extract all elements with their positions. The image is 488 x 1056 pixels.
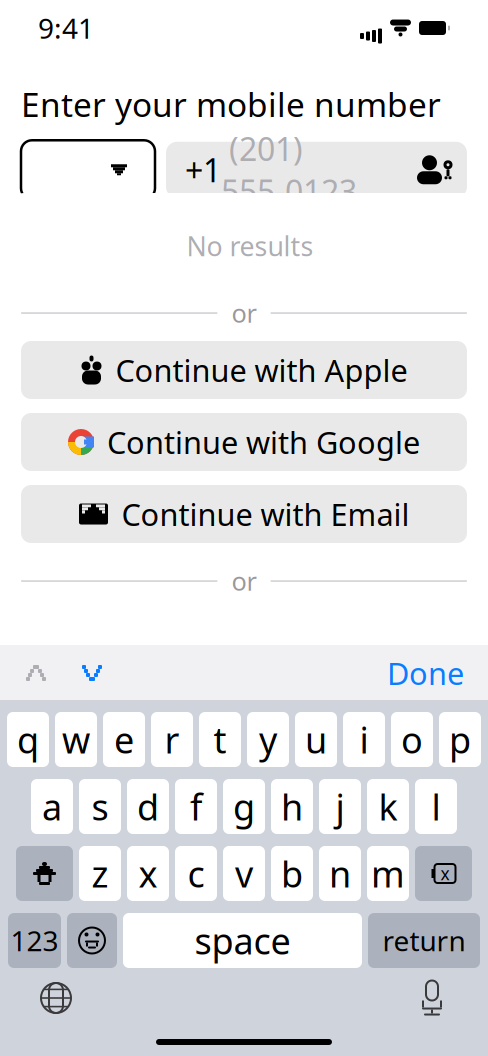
button[interactable]: p <box>439 712 481 767</box>
button[interactable]: Next keyboard <box>31 973 81 1023</box>
staticText: p <box>449 716 471 763</box>
staticText: t <box>213 716 226 763</box>
staticText: l <box>431 783 440 830</box>
button[interactable]: c <box>175 846 217 901</box>
button[interactable]: k <box>367 779 409 834</box>
staticText: j <box>335 783 344 830</box>
staticText: No results <box>186 228 313 264</box>
staticText: g <box>233 783 255 830</box>
button[interactable]: r <box>151 712 193 767</box>
button[interactable]: w <box>55 712 97 767</box>
button[interactable]: j <box>319 779 361 834</box>
staticText: a <box>42 783 62 830</box>
button[interactable]: d <box>127 779 169 834</box>
staticText: Done <box>387 653 464 693</box>
button[interactable]: Delete <box>415 846 472 901</box>
button[interactable]: Continue with Google <box>21 413 467 471</box>
staticText: Continue with Email <box>121 494 409 534</box>
staticText: m <box>371 850 405 897</box>
button[interactable]: z <box>79 846 121 901</box>
button[interactable]: b <box>271 846 313 901</box>
staticText: 9:41 <box>38 9 94 47</box>
staticText: Continue with Apple <box>115 350 407 390</box>
staticText: s <box>91 783 108 830</box>
button[interactable]: v <box>223 846 265 901</box>
button[interactable]: m <box>367 846 409 901</box>
staticText: q <box>17 716 39 763</box>
button[interactable]: n <box>319 846 361 901</box>
button[interactable]: Previous field <box>8 648 64 698</box>
staticText: Continue with Google <box>107 422 420 462</box>
button[interactable]: f <box>175 779 217 834</box>
button[interactable]: Continue with Email <box>21 485 467 543</box>
staticText: y <box>259 716 277 763</box>
staticText: x <box>138 850 157 897</box>
staticText: space <box>194 917 290 964</box>
button[interactable]: q <box>7 712 49 767</box>
staticText: +1 <box>185 148 221 191</box>
button[interactable]: Shift <box>16 846 73 901</box>
button[interactable]: t <box>199 712 241 767</box>
button[interactable]: x <box>127 846 169 901</box>
button[interactable]: Emoji <box>67 913 117 968</box>
staticText: d <box>137 783 159 830</box>
button[interactable]: Continue with Apple <box>21 341 467 399</box>
staticText: x <box>440 862 449 885</box>
button[interactable]: g <box>223 779 265 834</box>
staticText: b <box>281 850 303 897</box>
staticText: c <box>187 850 204 897</box>
staticText: e <box>114 716 134 763</box>
staticText: (201) 555-0123 <box>221 127 357 212</box>
staticText: o <box>401 716 423 763</box>
staticText: 123 <box>10 922 58 959</box>
button[interactable]: u <box>295 712 337 767</box>
button[interactable]: l <box>415 779 457 834</box>
button[interactable]: a <box>31 779 73 834</box>
staticText: u <box>305 716 327 763</box>
staticText: return <box>382 922 465 959</box>
button[interactable]: return <box>368 913 480 968</box>
button[interactable]: o <box>391 712 433 767</box>
staticText: n <box>329 850 351 897</box>
button[interactable]: Select country calling code <box>21 140 155 199</box>
staticText: i <box>359 716 368 763</box>
staticText: v <box>235 850 253 897</box>
staticText: f <box>190 783 202 830</box>
button[interactable]: 123 <box>8 913 61 968</box>
staticText: h <box>281 783 303 830</box>
button[interactable]: h <box>271 779 313 834</box>
staticText: r <box>164 716 179 763</box>
button[interactable]: Dictation <box>407 973 457 1023</box>
staticText: w <box>62 716 90 763</box>
button[interactable]: e <box>103 712 145 767</box>
staticText: k <box>378 783 397 830</box>
button[interactable]: space <box>123 913 362 968</box>
staticText: Enter your mobile number <box>21 82 441 126</box>
button[interactable]: i <box>343 712 385 767</box>
button[interactable]: +1 <box>166 142 467 198</box>
button[interactable]: Next field <box>64 648 120 698</box>
staticText: or <box>231 296 256 330</box>
staticText: z <box>91 850 108 897</box>
staticText: or <box>231 564 256 598</box>
button[interactable]: Done <box>371 648 480 698</box>
button[interactable]: s <box>79 779 121 834</box>
button[interactable]: y <box>247 712 289 767</box>
